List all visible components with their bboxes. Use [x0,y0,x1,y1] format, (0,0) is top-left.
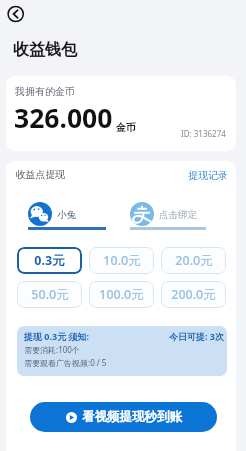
staticText: 今日可提: 3次 [169,330,225,342]
staticText: 100.0元 [99,286,144,303]
staticText: 收益点提现 [16,169,65,181]
staticText: 需要观看广告视频:0 / 5 [24,357,107,368]
staticText: 10.0元 [103,252,141,269]
button[interactable]: 点击绑定 [130,202,206,230]
button[interactable]: 200.0元 [161,281,226,308]
staticText: 提现记录 [188,169,228,182]
button[interactable]: Back [6,4,26,24]
button[interactable]: 50.0元 [17,281,82,308]
staticText: 我拥有的金币 [15,85,75,98]
staticText: 小兔 [57,209,76,221]
staticText: 看视频提现秒到账 [82,409,182,425]
staticText: 点击绑定 [159,209,197,221]
button[interactable]: 看视频提现秒到账 [30,402,217,432]
staticText: 326.000 [14,100,113,136]
button[interactable]: 小兔 [28,202,106,230]
button[interactable]: 20.0元 [161,247,226,274]
staticText: 提现 0.3元 须知: [24,330,90,342]
staticText: 需要消耗:100个 [24,344,80,355]
staticText: 50.0元 [31,286,69,303]
button[interactable]: 100.0元 [89,281,154,308]
staticText: 金币 [116,121,136,134]
staticText: ID: 3136274 [181,128,226,139]
button[interactable]: 0.3元 [17,247,82,274]
button[interactable]: 10.0元 [89,247,154,274]
staticText: 收益钱包 [13,40,77,60]
staticText: 200.0元 [171,286,216,303]
staticText: 0.3元 [34,252,65,269]
staticText: 20.0元 [175,252,213,269]
button[interactable]: 提现记录 [188,169,228,182]
